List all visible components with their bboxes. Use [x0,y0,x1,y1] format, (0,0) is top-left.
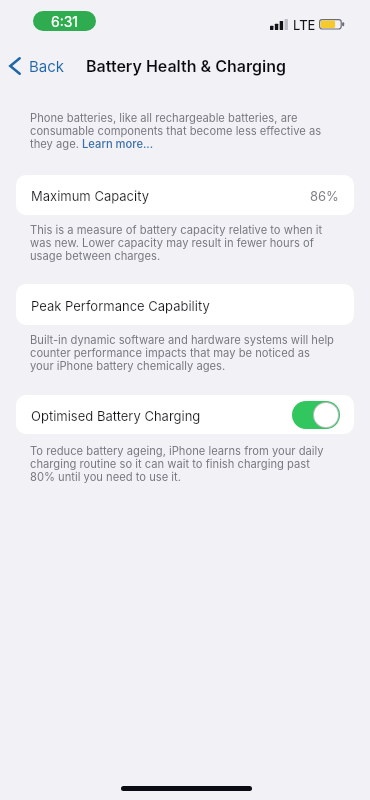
button[interactable]: Peak Performance Capability [16,284,354,325]
staticText: 6:31 [51,13,79,30]
staticText: This is a measure of battery capacity re… [30,224,336,263]
staticText: 86% [310,188,339,204]
staticText: To reduce battery ageing, iPhone learns … [30,445,336,484]
staticText: Built-in dynamic software and hardware s… [30,334,336,373]
staticText: Maximum Capacity [31,188,149,204]
staticText: Phone batteries, like all rechargeable b… [30,112,336,151]
button[interactable]: Maximum Capacity [16,175,354,215]
staticText: Battery Health & Charging [86,56,286,75]
staticText: Back [29,57,65,75]
button[interactable]: Optimised Battery Charging, on [292,401,340,429]
staticText: LTE [293,17,316,33]
staticText: Peak Performance Capability [31,298,210,314]
button[interactable]: Back [0,52,75,80]
staticText: Optimised Battery Charging [31,408,201,424]
button[interactable]: Optimised Battery Charging [16,395,354,434]
